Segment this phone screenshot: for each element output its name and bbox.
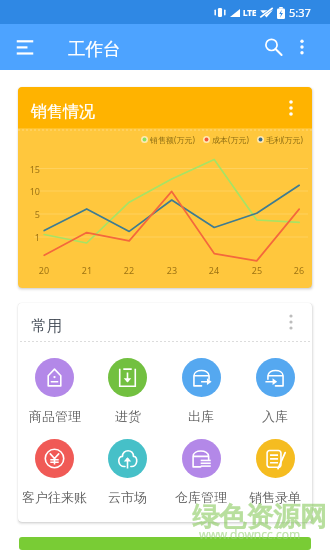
- button[interactable]: 仓库管理: [164, 439, 238, 505]
- staticText: 成本(万元): [212, 134, 249, 145]
- staticText: 销售情况: [31, 102, 95, 122]
- staticText: 5:37: [289, 5, 311, 20]
- button[interactable]: 客户往来账: [18, 439, 91, 505]
- staticText: 21: [77, 264, 97, 276]
- button[interactable]: Action bar: [19, 537, 311, 550]
- staticText: 20: [34, 264, 54, 276]
- button[interactable]: Open navigation menu: [11, 33, 39, 61]
- staticText: 工作台: [68, 38, 121, 60]
- button[interactable]: 商品管理: [18, 358, 91, 424]
- button[interactable]: 入库: [238, 358, 312, 424]
- button[interactable]: Search: [258, 32, 288, 62]
- button[interactable]: More options: [288, 33, 316, 61]
- staticText: 客户往来账: [22, 489, 87, 505]
- button[interactable]: Shortcut options: [279, 310, 303, 334]
- button[interactable]: 销售录单: [238, 439, 312, 505]
- staticText: 25: [247, 264, 267, 276]
- staticText: 15: [24, 163, 40, 175]
- staticText: 进货: [115, 408, 141, 424]
- button[interactable]: Chart options: [279, 96, 303, 120]
- button[interactable]: 出库: [164, 358, 238, 424]
- staticText: 22: [119, 264, 139, 276]
- staticText: LTE: [243, 7, 257, 18]
- staticText: 10: [24, 185, 40, 197]
- staticText: 出库: [188, 408, 214, 424]
- button[interactable]: 云市场: [91, 439, 164, 505]
- staticText: 云市场: [108, 489, 147, 505]
- staticText: 商品管理: [29, 408, 81, 424]
- staticText: 常用: [31, 316, 62, 336]
- staticText: 仓库管理: [175, 489, 227, 505]
- staticText: www.downcc.com: [199, 526, 301, 542]
- staticText: 入库: [262, 408, 288, 424]
- staticText: 销售额(万元): [150, 134, 195, 145]
- staticText: 26: [289, 264, 309, 276]
- button[interactable]: 进货: [91, 358, 164, 424]
- staticText: 1: [24, 231, 40, 243]
- staticText: 毛利(万元): [266, 134, 303, 145]
- staticText: 23: [162, 264, 182, 276]
- staticText: 5: [24, 208, 40, 220]
- staticText: 绿色资源网: [192, 500, 327, 534]
- staticText: 24: [204, 264, 224, 276]
- staticText: 销售录单: [249, 489, 301, 505]
